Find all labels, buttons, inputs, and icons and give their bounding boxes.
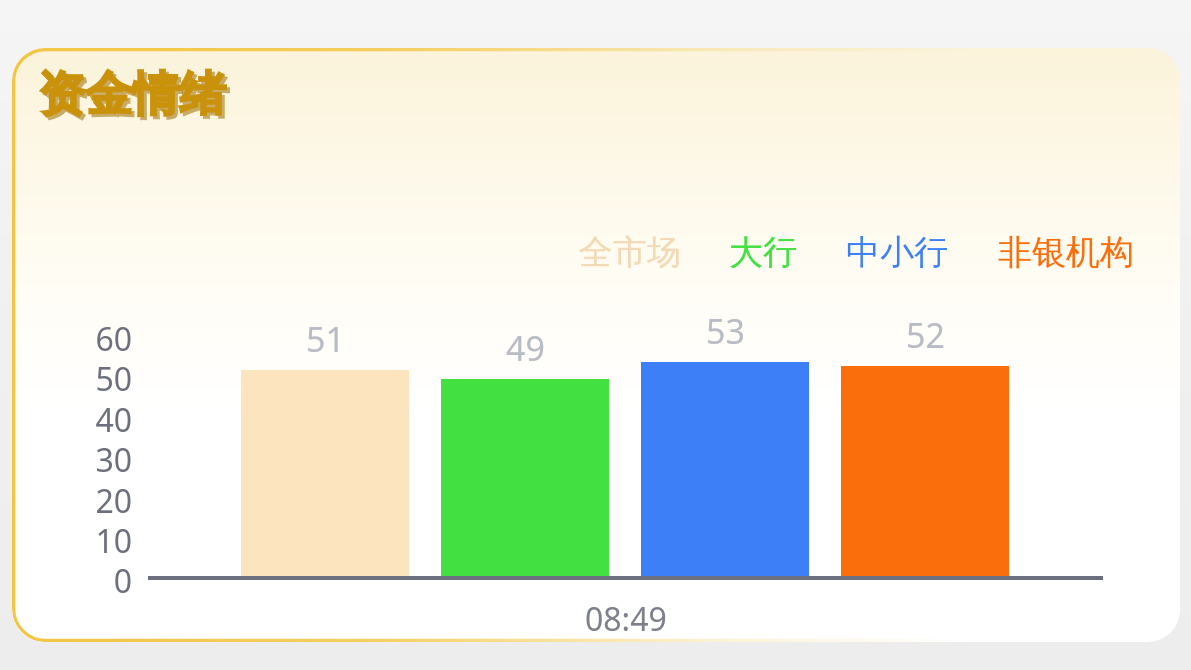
staticText: 中小行 bbox=[846, 231, 948, 274]
button[interactable]: 中小行 bbox=[846, 229, 962, 275]
button[interactable]: 大行 49 bbox=[441, 379, 609, 578]
staticText: 10 bbox=[95, 519, 132, 557]
button[interactable]: 大行 bbox=[729, 229, 803, 275]
staticText: 40 bbox=[95, 398, 132, 436]
button[interactable]: 全市场 bbox=[579, 229, 685, 275]
staticText: 52 bbox=[906, 312, 945, 358]
staticText: 53 bbox=[706, 308, 745, 354]
staticText: 0 bbox=[113, 559, 132, 597]
staticText: 大行 bbox=[729, 231, 797, 274]
staticText: 08:49 bbox=[585, 597, 667, 641]
staticText: 20 bbox=[95, 479, 132, 517]
button[interactable] bbox=[12, 48, 1180, 642]
staticText: 资金情绪 bbox=[41, 68, 229, 127]
staticText: 60 bbox=[95, 317, 132, 355]
button[interactable]: 中小行 53 bbox=[641, 362, 809, 578]
button[interactable]: 非银机构 bbox=[998, 229, 1150, 275]
staticText: 非银机构 bbox=[998, 231, 1134, 274]
staticText: 资金情绪 bbox=[38, 65, 226, 124]
button[interactable]: 非银机构 52 bbox=[841, 366, 1009, 578]
staticText: 49 bbox=[506, 325, 545, 371]
staticText: 全市场 bbox=[579, 231, 681, 274]
staticText: 51 bbox=[306, 316, 345, 362]
staticText: 50 bbox=[95, 357, 132, 395]
staticText: 30 bbox=[95, 438, 132, 476]
button[interactable]: 全市场 51 bbox=[241, 370, 409, 578]
